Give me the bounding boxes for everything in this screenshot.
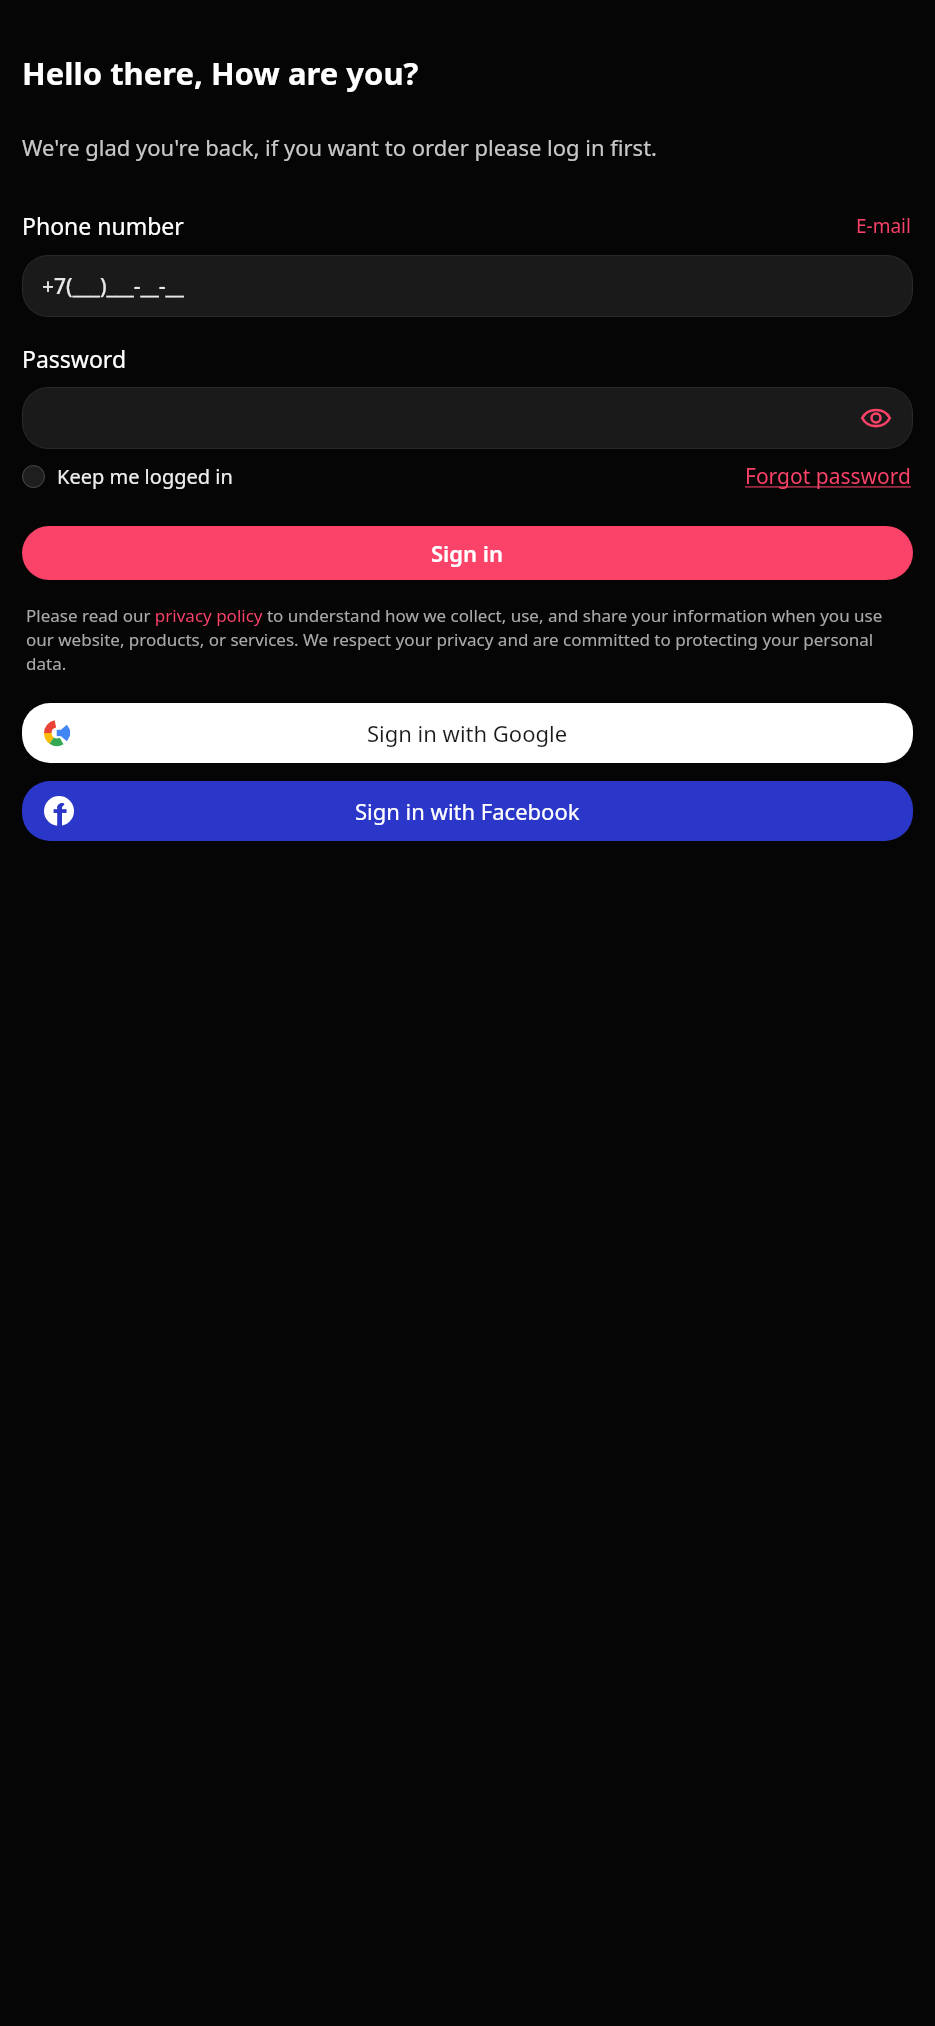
staticText: Hello there, How are you?: [22, 52, 419, 94]
staticText: Phone number: [22, 210, 184, 241]
button[interactable]: Sign in with Facebook: [22, 781, 913, 841]
button[interactable]: Forgot password: [743, 460, 913, 493]
button[interactable]: Sign in with Google: [22, 703, 913, 763]
staticText: Sign in with Facebook: [355, 796, 580, 826]
staticText: Forgot password: [745, 462, 911, 491]
button[interactable]: +7(___)___-__-__: [22, 255, 913, 317]
staticText: +7(___)___-__-__: [42, 272, 184, 301]
button[interactable]: E-mail: [854, 211, 913, 241]
staticText: Please read our privacy policy to unders…: [26, 604, 909, 675]
button[interactable]: Show password: [859, 401, 893, 435]
button[interactable]: Show password: [22, 387, 913, 449]
staticText: Sign in with Google: [367, 718, 568, 748]
button[interactable]: Keep me logged in: [22, 459, 233, 494]
staticText: E-mail: [856, 213, 911, 239]
staticText: Password: [22, 343, 127, 374]
staticText: Keep me logged in: [57, 463, 233, 490]
staticText: We're glad you're back, if you want to o…: [22, 132, 657, 162]
staticText: Sign in: [431, 538, 504, 568]
button[interactable]: Sign in: [22, 526, 913, 580]
